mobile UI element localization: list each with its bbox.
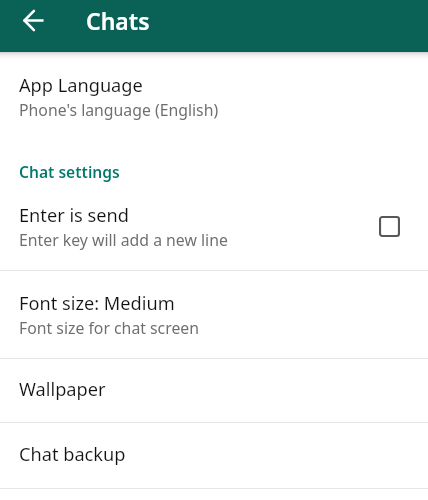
staticText: Enter is send [19,203,129,228]
staticText: Wallpaper [19,377,106,402]
staticText: Font size: Medium [19,291,175,316]
button[interactable]: Navigate up [11,0,55,44]
staticText: Font size for chat screen [19,317,199,339]
staticText: Chat settings [19,161,120,182]
staticText: Chats [86,5,150,36]
button[interactable]: Chat backup [0,423,428,488]
button[interactable]: Enter is send, off [369,206,410,247]
staticText: Phone's language (English) [19,99,219,121]
button[interactable]: App Language [0,62,428,128]
button[interactable]: Font size: Medium [0,280,428,358]
button[interactable]: Enter is send [0,192,428,270]
staticText: Chat backup [19,442,126,467]
staticText: Enter key will add a new line [19,229,228,251]
button[interactable]: Wallpaper [0,359,428,422]
staticText: App Language [19,73,143,98]
